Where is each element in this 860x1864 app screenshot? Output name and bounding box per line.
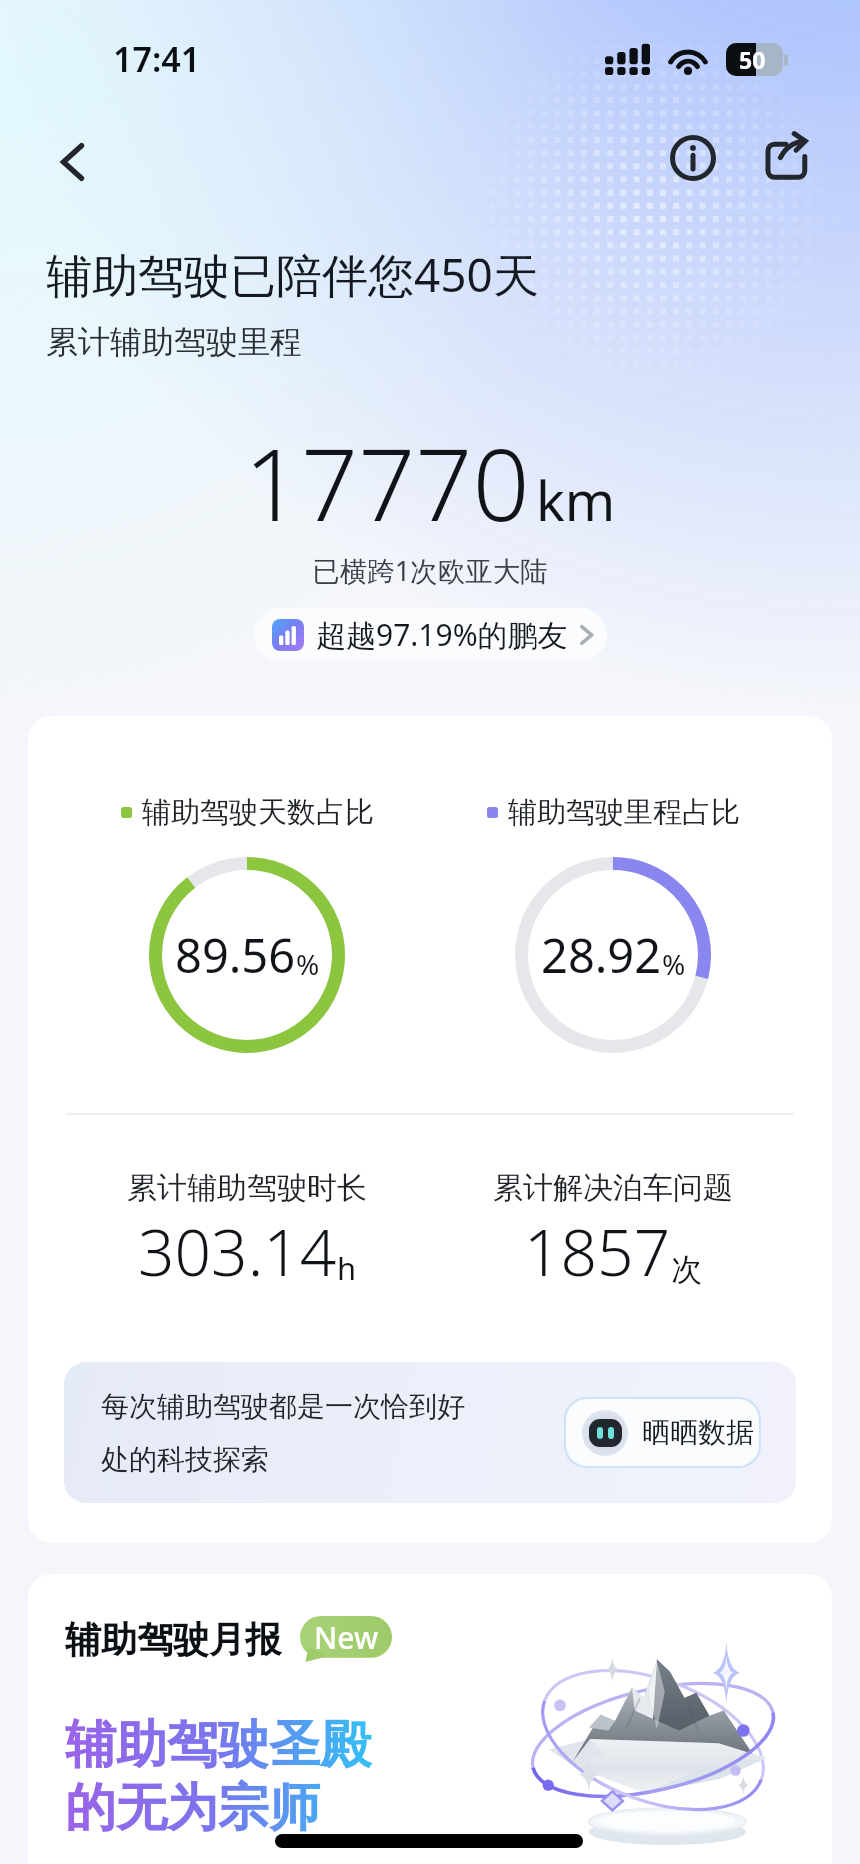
button[interactable]: Share [746, 119, 824, 197]
staticText: 50 [739, 44, 766, 75]
staticText: 次 [671, 1250, 702, 1289]
staticText: 处的科技探索 [101, 1442, 269, 1477]
button[interactable]: 晒晒数据 [566, 1399, 759, 1466]
staticText: 辅助驾驶已陪伴您450天 [46, 243, 539, 306]
staticText: 已横跨1次欧亚大陆 [0, 552, 860, 590]
button[interactable]: 辅助驾驶月报 [28, 1574, 832, 1864]
staticText: 28.92 [541, 923, 662, 987]
staticText: 89.56 [175, 923, 296, 987]
staticText: 辅助驾驶里程占比 [508, 794, 740, 831]
staticText: 1857 [524, 1208, 671, 1295]
staticText: h [337, 1247, 357, 1289]
staticText: % [296, 945, 320, 983]
staticText: 辅助驾驶天数占比 [142, 794, 374, 831]
staticText: 晒晒数据 [642, 1415, 754, 1450]
staticText: 累计解决泊车问题 [493, 1169, 733, 1207]
staticText: km [536, 463, 616, 537]
staticText: 303.14 [138, 1208, 337, 1295]
staticText: 辅助驾驶月报 [65, 1617, 281, 1662]
staticText: 超越97.19%的鹏友 [316, 614, 568, 655]
staticText: 17:41 [113, 36, 201, 82]
staticText: 的无为宗师 [65, 1776, 320, 1840]
staticText: 每次辅助驾驶都是一次恰到好 [101, 1389, 465, 1424]
button[interactable]: 超越97.19%的鹏友 [254, 608, 607, 661]
staticText: 17770 [244, 414, 530, 550]
staticText: New [314, 1617, 379, 1658]
staticText: 累计辅助驾驶里程 [46, 322, 302, 362]
button[interactable]: Info [654, 119, 732, 197]
staticText: % [662, 945, 686, 983]
staticText: 累计辅助驾驶时长 [127, 1169, 367, 1207]
button[interactable]: Back [30, 118, 110, 198]
staticText: 辅助驾驶圣殿 [65, 1713, 371, 1777]
